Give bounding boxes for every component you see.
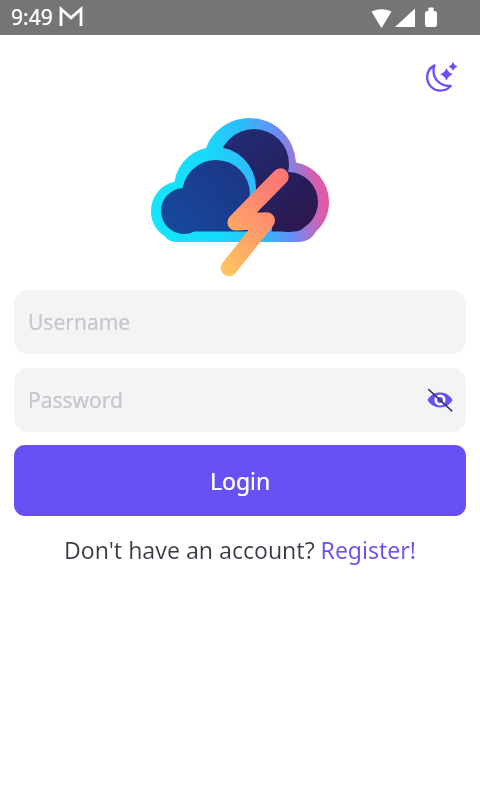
- button[interactable]: Toggle dark mode: [426, 62, 460, 96]
- button[interactable]: Don't have an account? Register!: [0, 534, 480, 565]
- button[interactable]: Show password: [425, 385, 455, 415]
- button[interactable]: Username: [14, 290, 466, 354]
- staticText: Don't have an account? Register!: [64, 534, 416, 565]
- staticText: Username: [28, 308, 131, 337]
- staticText: Password: [28, 386, 123, 415]
- staticText: Login: [210, 465, 271, 496]
- button[interactable]: Login: [14, 445, 466, 516]
- button[interactable]: Password: [14, 368, 466, 432]
- staticText: 9:49: [11, 3, 53, 32]
